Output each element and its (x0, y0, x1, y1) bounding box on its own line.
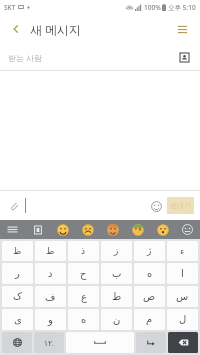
button[interactable]: س (167, 286, 198, 307)
staticText: ل (179, 314, 187, 326)
staticText: SKT (4, 3, 16, 12)
staticText: ۱۲. (44, 338, 55, 348)
staticText: م (146, 314, 153, 326)
staticText: ز (114, 246, 119, 256)
button[interactable]: 보내기 (167, 197, 194, 214)
staticText: ء (180, 246, 185, 256)
staticText: ذ (81, 246, 86, 256)
staticText: ط (46, 246, 55, 256)
button[interactable]: Emoji 0 (50, 220, 75, 239)
staticText: 새 메시지 (30, 21, 82, 37)
button[interactable]: ی (2, 309, 33, 330)
staticText: ظ (13, 246, 22, 256)
button[interactable]: ف (35, 286, 66, 307)
button[interactable]: More emoji (175, 220, 200, 239)
staticText: 받는 사람 (8, 52, 43, 63)
staticText: ص (143, 291, 156, 303)
button[interactable]: Backspace (168, 332, 198, 353)
button[interactable]: ۱۲. (34, 332, 64, 353)
staticText: د (48, 268, 53, 280)
staticText: ع (81, 291, 87, 303)
staticText: ه (147, 268, 153, 280)
button[interactable]: د (35, 263, 66, 284)
staticText: ب (112, 268, 122, 280)
staticText: 보내기 (170, 201, 191, 210)
staticText: 오후 5:10 (168, 3, 196, 12)
button[interactable]: ظ (2, 241, 33, 261)
button[interactable]: Emoji 4 (150, 220, 175, 239)
button[interactable]: Enter (136, 332, 166, 353)
staticText: ح (80, 268, 87, 280)
button[interactable]: ژ (134, 241, 165, 261)
button[interactable]: Attach (5, 197, 23, 215)
button[interactable]: ط (101, 286, 132, 307)
button[interactable]: Emoji 2 (100, 220, 125, 239)
button[interactable]: Space (66, 332, 134, 353)
button[interactable]: Emoji 1 (75, 220, 100, 239)
button[interactable]: ا (167, 263, 198, 284)
button[interactable]: و (35, 309, 66, 330)
button[interactable]: ع (68, 286, 99, 307)
button[interactable]: ط (35, 241, 66, 261)
button[interactable]: Add recipient from contacts (176, 49, 192, 65)
button[interactable]: Emoji 3 (125, 220, 150, 239)
staticText: ف (45, 291, 56, 303)
staticText: ن (113, 314, 121, 326)
button[interactable]: م (134, 309, 165, 330)
staticText: 100% (144, 3, 161, 12)
button[interactable]: ذ (68, 241, 99, 261)
button[interactable]: Stickers (25, 220, 50, 239)
staticText: ر (15, 268, 20, 280)
button[interactable]: ء (167, 241, 198, 261)
staticText: ژ (147, 246, 152, 256)
button[interactable]: Menu (172, 19, 192, 39)
staticText: ک (13, 291, 22, 303)
button[interactable]: ح (68, 263, 99, 284)
button[interactable]: Keyboard options (0, 220, 25, 239)
button[interactable]: ص (134, 286, 165, 307)
staticText: ط (112, 291, 122, 303)
button[interactable]: ل (167, 309, 198, 330)
button[interactable]: ک (2, 286, 33, 307)
button[interactable]: Change language (2, 332, 32, 353)
staticText: س (176, 291, 189, 303)
staticText: ا (181, 268, 184, 280)
staticText: ه (81, 314, 87, 326)
button[interactable]: ز (101, 241, 132, 261)
button[interactable]: ه (134, 263, 165, 284)
button[interactable]: Back (8, 21, 24, 37)
staticText: ی (14, 314, 22, 326)
staticText: و (48, 314, 53, 326)
button[interactable]: ن (101, 309, 132, 330)
button[interactable]: ر (2, 263, 33, 284)
button[interactable]: ب (101, 263, 132, 284)
button[interactable]: ه (68, 309, 99, 330)
button[interactable]: Emoji (147, 197, 165, 215)
